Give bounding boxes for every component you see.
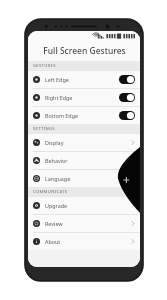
staticText: Right Edge bbox=[45, 94, 119, 101]
button[interactable]: Toggle bbox=[119, 93, 135, 102]
button[interactable]: Toggle bbox=[119, 111, 135, 120]
button[interactable]: Toggle bbox=[119, 75, 135, 84]
staticText: Left Edge bbox=[45, 76, 119, 83]
button[interactable]: Right Edge bbox=[28, 89, 140, 106]
staticText: Full Screen Gestures bbox=[43, 45, 126, 57]
staticText: Behavior bbox=[45, 157, 131, 164]
button[interactable]: Bottom Edge bbox=[28, 107, 140, 124]
staticText: Display bbox=[45, 139, 131, 146]
button[interactable]: Behavior bbox=[28, 152, 140, 169]
button[interactable]: Display bbox=[28, 134, 140, 151]
staticText: SETTINGS bbox=[33, 126, 55, 132]
staticText: COMMUNICATE bbox=[33, 189, 68, 195]
staticText: Bottom Edge bbox=[45, 112, 119, 119]
button[interactable]: About bbox=[28, 233, 140, 250]
button[interactable]: Language bbox=[28, 170, 140, 187]
staticText: Language bbox=[45, 175, 131, 182]
staticText: GESTURES bbox=[33, 63, 56, 69]
staticText: Upgrade bbox=[45, 202, 131, 209]
staticText: Review bbox=[45, 220, 131, 227]
button[interactable]: Upgrade bbox=[28, 197, 140, 214]
button[interactable]: Review bbox=[28, 215, 140, 232]
button[interactable]: Left Edge bbox=[28, 71, 140, 88]
staticText: About bbox=[45, 238, 131, 245]
